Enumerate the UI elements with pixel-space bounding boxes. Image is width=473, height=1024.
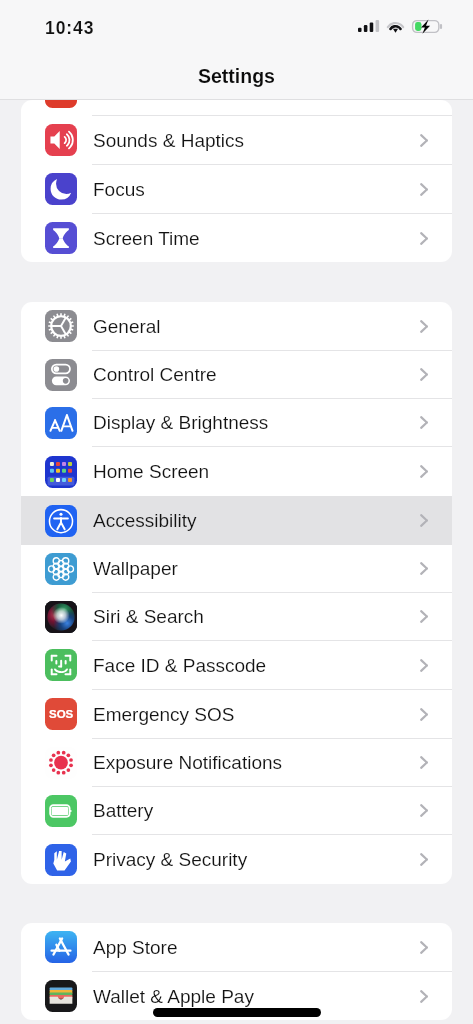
staticText: Home Screen [93,461,210,482]
button[interactable]: App Store [21,923,452,972]
staticText: Face ID & Passcode [93,655,267,676]
staticText: Control Centre [93,364,217,385]
staticText: 10:43 [45,18,95,38]
staticText: Sounds & Haptics [93,130,245,151]
staticText: Accessibility [93,510,197,531]
button[interactable]: Privacy & Security [21,835,452,884]
button[interactable]: Focus [21,165,452,214]
staticText: Wallet & Apple Pay [93,986,254,1007]
staticText: App Store [93,937,178,958]
button[interactable]: Siri & Search [21,593,452,641]
button[interactable]: Wallpaper [21,545,452,593]
button[interactable]: General [21,302,452,351]
staticText: Wallpaper [93,558,178,579]
staticText: Privacy & Security [93,849,248,870]
button[interactable]: Screen Time [21,214,452,262]
staticText: Settings [198,65,275,87]
button[interactable]: Accessibility [21,496,452,545]
staticText: Exposure Notifications [93,752,283,773]
staticText: Battery [93,800,154,821]
button[interactable]: Battery [21,787,452,835]
button[interactable]: Home Screen [21,447,452,496]
staticText: General [93,316,161,337]
button[interactable]: Face ID & Passcode [21,641,452,690]
button[interactable]: Control Centre [21,351,452,399]
button[interactable] [21,100,452,116]
staticText: SOS [49,708,74,721]
button[interactable]: SOS [21,690,452,739]
staticText: Siri & Search [93,606,204,627]
button[interactable]: Wallet & Apple Pay [21,972,452,1020]
staticText: Screen Time [93,228,200,249]
button[interactable]: Sounds & Haptics [21,116,452,165]
button[interactable]: Display & Brightness [21,399,452,447]
button[interactable]: Exposure Notifications [21,739,452,787]
staticText: Display & Brightness [93,412,269,433]
staticText: Emergency SOS [93,704,235,725]
staticText: Focus [93,179,145,200]
